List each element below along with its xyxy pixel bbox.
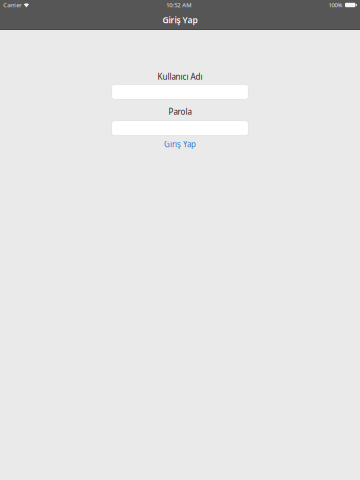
staticText: 10:52 AM [166, 1, 191, 9]
button[interactable]: Kullanıcı Adı [112, 84, 248, 99]
staticText: Kullanıcı Adı [157, 71, 202, 82]
button[interactable]: Parola [112, 121, 248, 136]
staticText: Giriş Yap [164, 139, 196, 150]
staticText: Carrier [3, 1, 21, 9]
staticText: 100% [328, 1, 342, 9]
staticText: Parola [168, 106, 191, 117]
button[interactable]: Giriş Yap [150, 140, 210, 149]
staticText: Giriş Yap [162, 14, 197, 26]
